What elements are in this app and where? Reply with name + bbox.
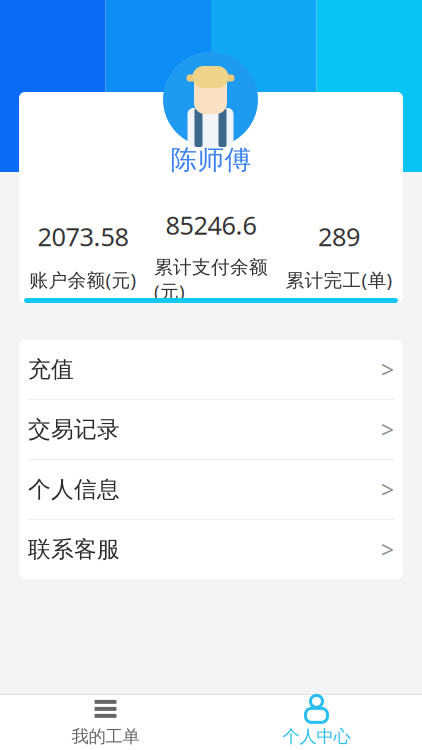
button[interactable]: 个人中心 <box>211 695 422 750</box>
staticText: 289 <box>318 220 360 253</box>
staticText: 账户余额(元) <box>29 267 136 292</box>
staticText: > <box>381 414 394 444</box>
staticText: > <box>381 354 394 384</box>
staticText: 2073.58 <box>37 220 128 253</box>
staticText: 85246.6 <box>165 208 256 242</box>
staticText: 个人信息 <box>28 476 120 503</box>
staticText: 累计支付余额(元) <box>154 256 268 303</box>
staticText: 陈师傅 <box>170 143 251 176</box>
button[interactable]: 个人信息 <box>19 460 403 519</box>
staticText: 充值 <box>28 356 74 383</box>
button[interactable]: 我的工单 <box>0 695 211 750</box>
button[interactable]: 联系客服 <box>19 520 403 579</box>
button[interactable]: 充值 <box>19 340 403 399</box>
button[interactable]: 交易记录 <box>19 400 403 459</box>
staticText: 累计完工(单) <box>285 267 392 292</box>
staticText: > <box>381 534 394 564</box>
staticText: 联系客服 <box>28 536 120 563</box>
staticText: 个人中心 <box>282 726 350 747</box>
staticText: 我的工单 <box>71 726 139 747</box>
staticText: > <box>381 474 394 504</box>
staticText: 交易记录 <box>28 416 120 443</box>
